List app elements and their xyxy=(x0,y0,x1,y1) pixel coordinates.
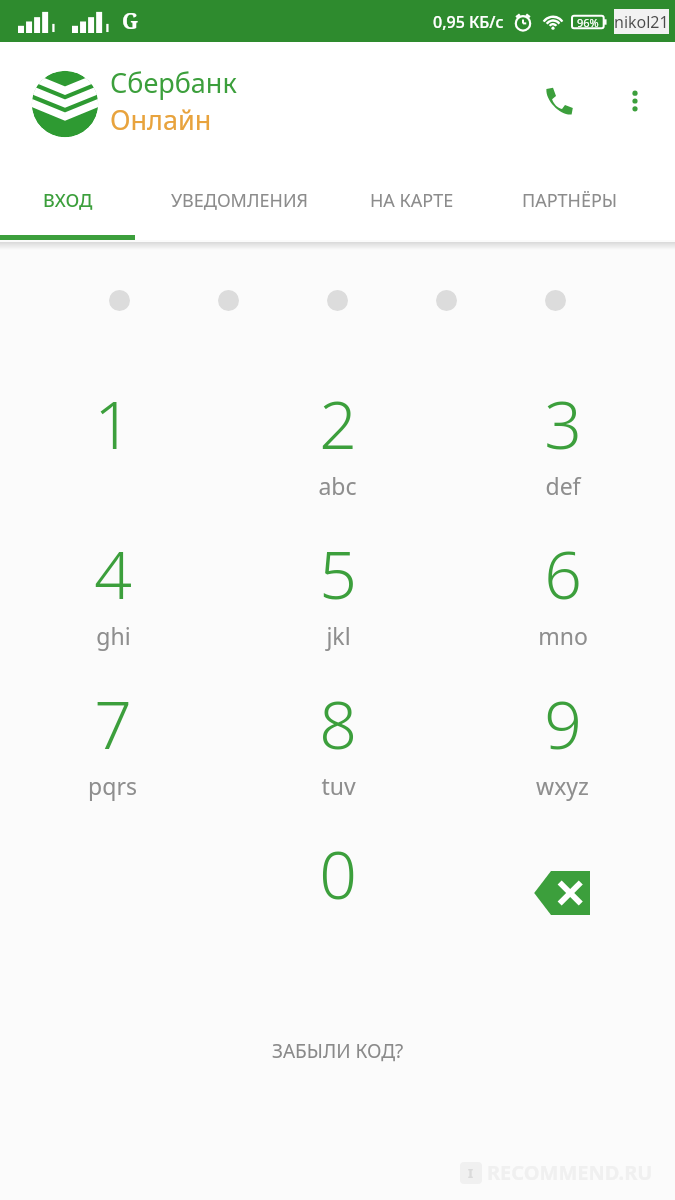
staticText: mno xyxy=(538,620,588,651)
button[interactable]: 8 xyxy=(225,678,450,828)
staticText: jkl xyxy=(326,620,351,651)
staticText: 8 xyxy=(319,678,357,768)
button[interactable]: More options xyxy=(611,77,659,125)
staticText: ВХОД xyxy=(43,188,93,213)
staticText: 9 xyxy=(544,678,582,768)
button[interactable]: 4 xyxy=(0,528,225,678)
staticText: 0 xyxy=(319,828,357,918)
staticText: def xyxy=(545,470,581,501)
button[interactable]: ПАРТНЁРЫ xyxy=(481,160,675,240)
button[interactable]: 6 xyxy=(450,528,675,678)
staticText: wxyz xyxy=(536,770,589,801)
button[interactable]: 5 xyxy=(225,528,450,678)
staticText: abc xyxy=(318,470,357,501)
staticText: 3 xyxy=(544,378,582,468)
staticText: tuv xyxy=(321,770,356,801)
staticText: G xyxy=(122,7,139,36)
staticText: 1 xyxy=(94,378,132,468)
button[interactable]: Backspace xyxy=(450,828,675,958)
button[interactable]: 3 xyxy=(450,378,675,528)
staticText: 6 xyxy=(544,528,582,618)
staticText: НА КАРТЕ xyxy=(370,188,454,213)
button[interactable]: 9 xyxy=(450,678,675,828)
staticText: nikol21 xyxy=(614,11,669,33)
staticText: 7 xyxy=(94,678,132,768)
staticText: 0,95 КБ/с xyxy=(433,11,504,33)
staticText: ЗАБЫЛИ КОД? xyxy=(272,1038,404,1064)
button[interactable]: 2 xyxy=(225,378,450,528)
staticText: ghi xyxy=(96,620,131,651)
button[interactable]: 7 xyxy=(0,678,225,828)
staticText: 96% xyxy=(577,15,599,30)
staticText: RECOMMEND.RU xyxy=(487,1159,653,1186)
staticText: 4 xyxy=(94,528,132,618)
staticText: Онлайн xyxy=(110,101,212,138)
button[interactable]: 1 xyxy=(0,378,225,528)
staticText: УВЕДОМЛЕНИЯ xyxy=(171,188,308,213)
button[interactable]: 0 xyxy=(225,828,450,958)
button[interactable]: ВХОД xyxy=(0,160,135,240)
button[interactable]: Call xyxy=(533,75,585,127)
staticText: ПАРТНЁРЫ xyxy=(522,188,618,213)
button[interactable]: ЗАБЫЛИ КОД? xyxy=(252,1028,424,1074)
staticText: 5 xyxy=(319,528,357,618)
button[interactable]: УВЕДОМЛЕНИЯ xyxy=(135,160,343,240)
staticText: 10:12 xyxy=(614,9,661,34)
button[interactable]: НА КАРТЕ xyxy=(343,160,481,240)
staticText: Сбербанк xyxy=(110,64,237,101)
staticText: I xyxy=(468,1164,474,1182)
staticText: pqrs xyxy=(88,770,137,801)
staticText: 2 xyxy=(319,378,357,468)
